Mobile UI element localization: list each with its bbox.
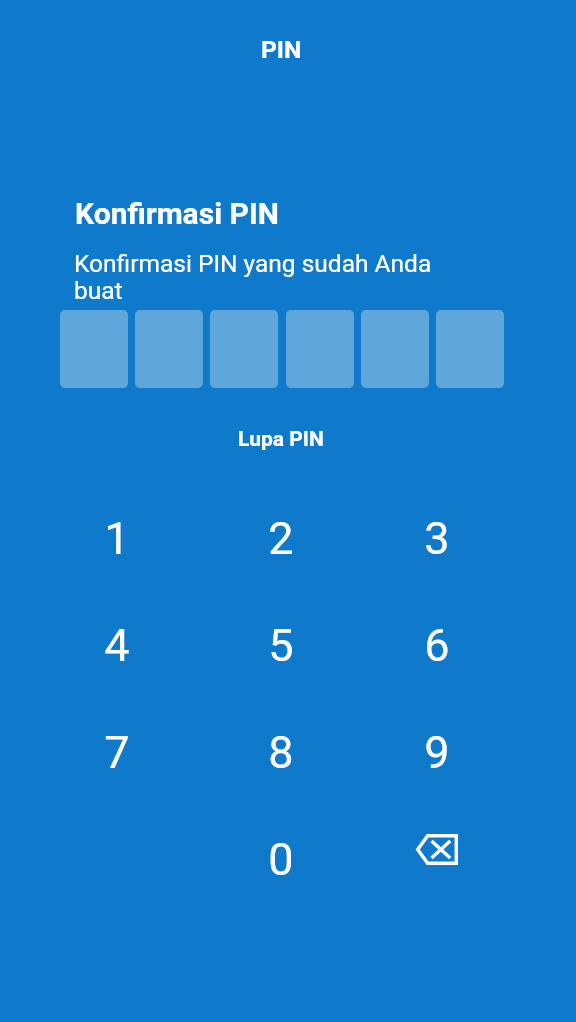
button[interactable]: PIN digit 4 [286, 310, 354, 388]
button[interactable]: 7 [53, 700, 181, 804]
staticText: 5 [268, 619, 294, 672]
button[interactable]: 8 [217, 700, 345, 804]
staticText: 3 [424, 512, 450, 565]
button[interactable]: 1 [53, 486, 181, 590]
staticText: Lupa PIN [238, 427, 324, 452]
staticText: 9 [424, 726, 450, 779]
staticText: 4 [104, 619, 130, 672]
button[interactable]: PIN digit 2 [135, 310, 203, 388]
button[interactable]: PIN digit 5 [361, 310, 429, 388]
button[interactable]: 9 [373, 700, 501, 804]
button[interactable]: 2 [217, 486, 345, 590]
button[interactable]: 0 [217, 807, 345, 911]
staticText: Konfirmasi PIN yang sudah Anda buat [74, 249, 436, 305]
button[interactable]: PIN digit 3 [210, 310, 278, 388]
button[interactable]: PIN digit 6 [436, 310, 504, 388]
button[interactable]: 5 [217, 593, 345, 697]
staticText: 0 [268, 833, 294, 886]
button[interactable]: Backspace [373, 807, 501, 911]
staticText: Konfirmasi PIN [75, 196, 279, 231]
staticText: 1 [104, 512, 130, 565]
button[interactable]: 6 [373, 593, 501, 697]
staticText: 7 [104, 726, 130, 779]
button[interactable]: 4 [53, 593, 181, 697]
staticText: PIN [261, 35, 302, 64]
staticText: 6 [424, 619, 450, 672]
button[interactable]: Lupa PIN [238, 427, 324, 452]
button[interactable]: PIN digit 1 [60, 310, 128, 388]
staticText: 2 [268, 512, 294, 565]
staticText: 8 [268, 726, 294, 779]
button[interactable]: 3 [373, 486, 501, 590]
